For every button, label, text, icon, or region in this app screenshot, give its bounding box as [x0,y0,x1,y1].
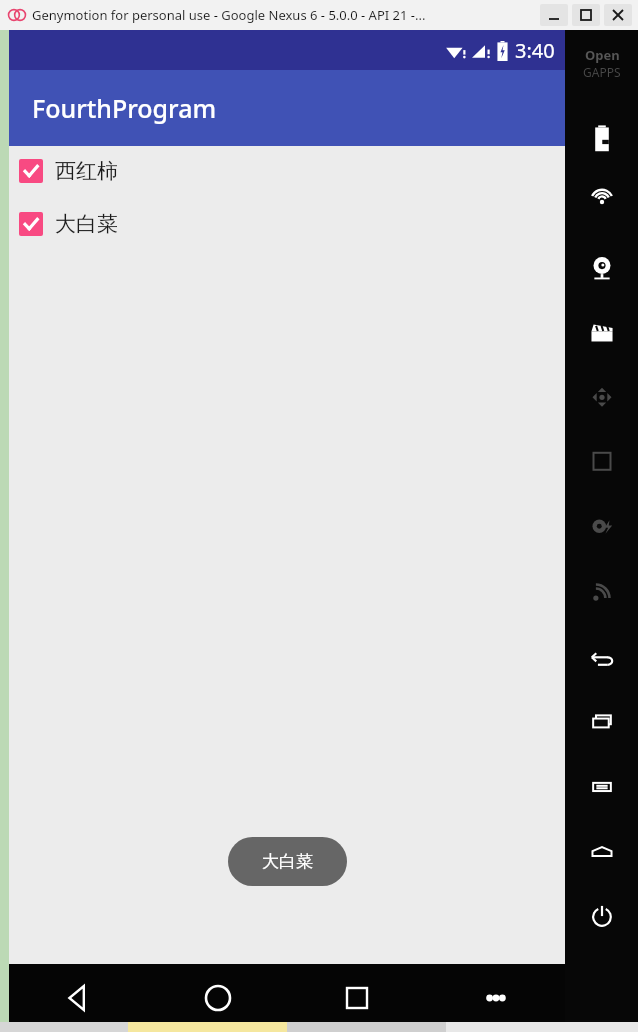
button[interactable]: Home [148,964,287,1032]
staticText: 大白菜 [262,851,313,872]
button[interactable]: Record video [565,301,638,366]
staticText: 大白菜 [55,211,118,237]
button[interactable]: Recents [565,691,638,756]
button[interactable]: max [572,4,600,26]
button[interactable]: Menu [565,756,638,821]
staticText: Genymotion for personal use - Google Nex… [32,6,426,24]
button[interactable]: Back [565,626,638,691]
button[interactable]: Back [9,964,148,1032]
button[interactable]: More options [426,964,565,1032]
button[interactable]: Battery [565,106,638,171]
staticText: 3:40 [515,37,555,64]
staticText: Open [585,46,620,64]
button[interactable]: Camera [565,236,638,301]
button[interactable]: Home [565,821,638,886]
button[interactable]: Virtual sensors [565,366,638,431]
staticText: FourthProgram [32,91,217,125]
button[interactable]: 西红柿 [9,154,565,188]
button[interactable]: 大白菜 [9,207,565,241]
button[interactable]: min [540,4,568,26]
staticText: free for personal use [11,959,236,990]
button[interactable]: close [604,4,632,26]
button[interactable]: Identifiers [565,431,638,496]
staticText: GAPPS [583,64,621,80]
button[interactable]: GPS [565,171,638,236]
button[interactable]: Power [565,886,638,951]
button[interactable]: Recents [287,964,426,1032]
button[interactable]: Disk IO [565,496,638,561]
button[interactable]: Network [565,561,638,626]
staticText: 西红柿 [55,158,118,184]
